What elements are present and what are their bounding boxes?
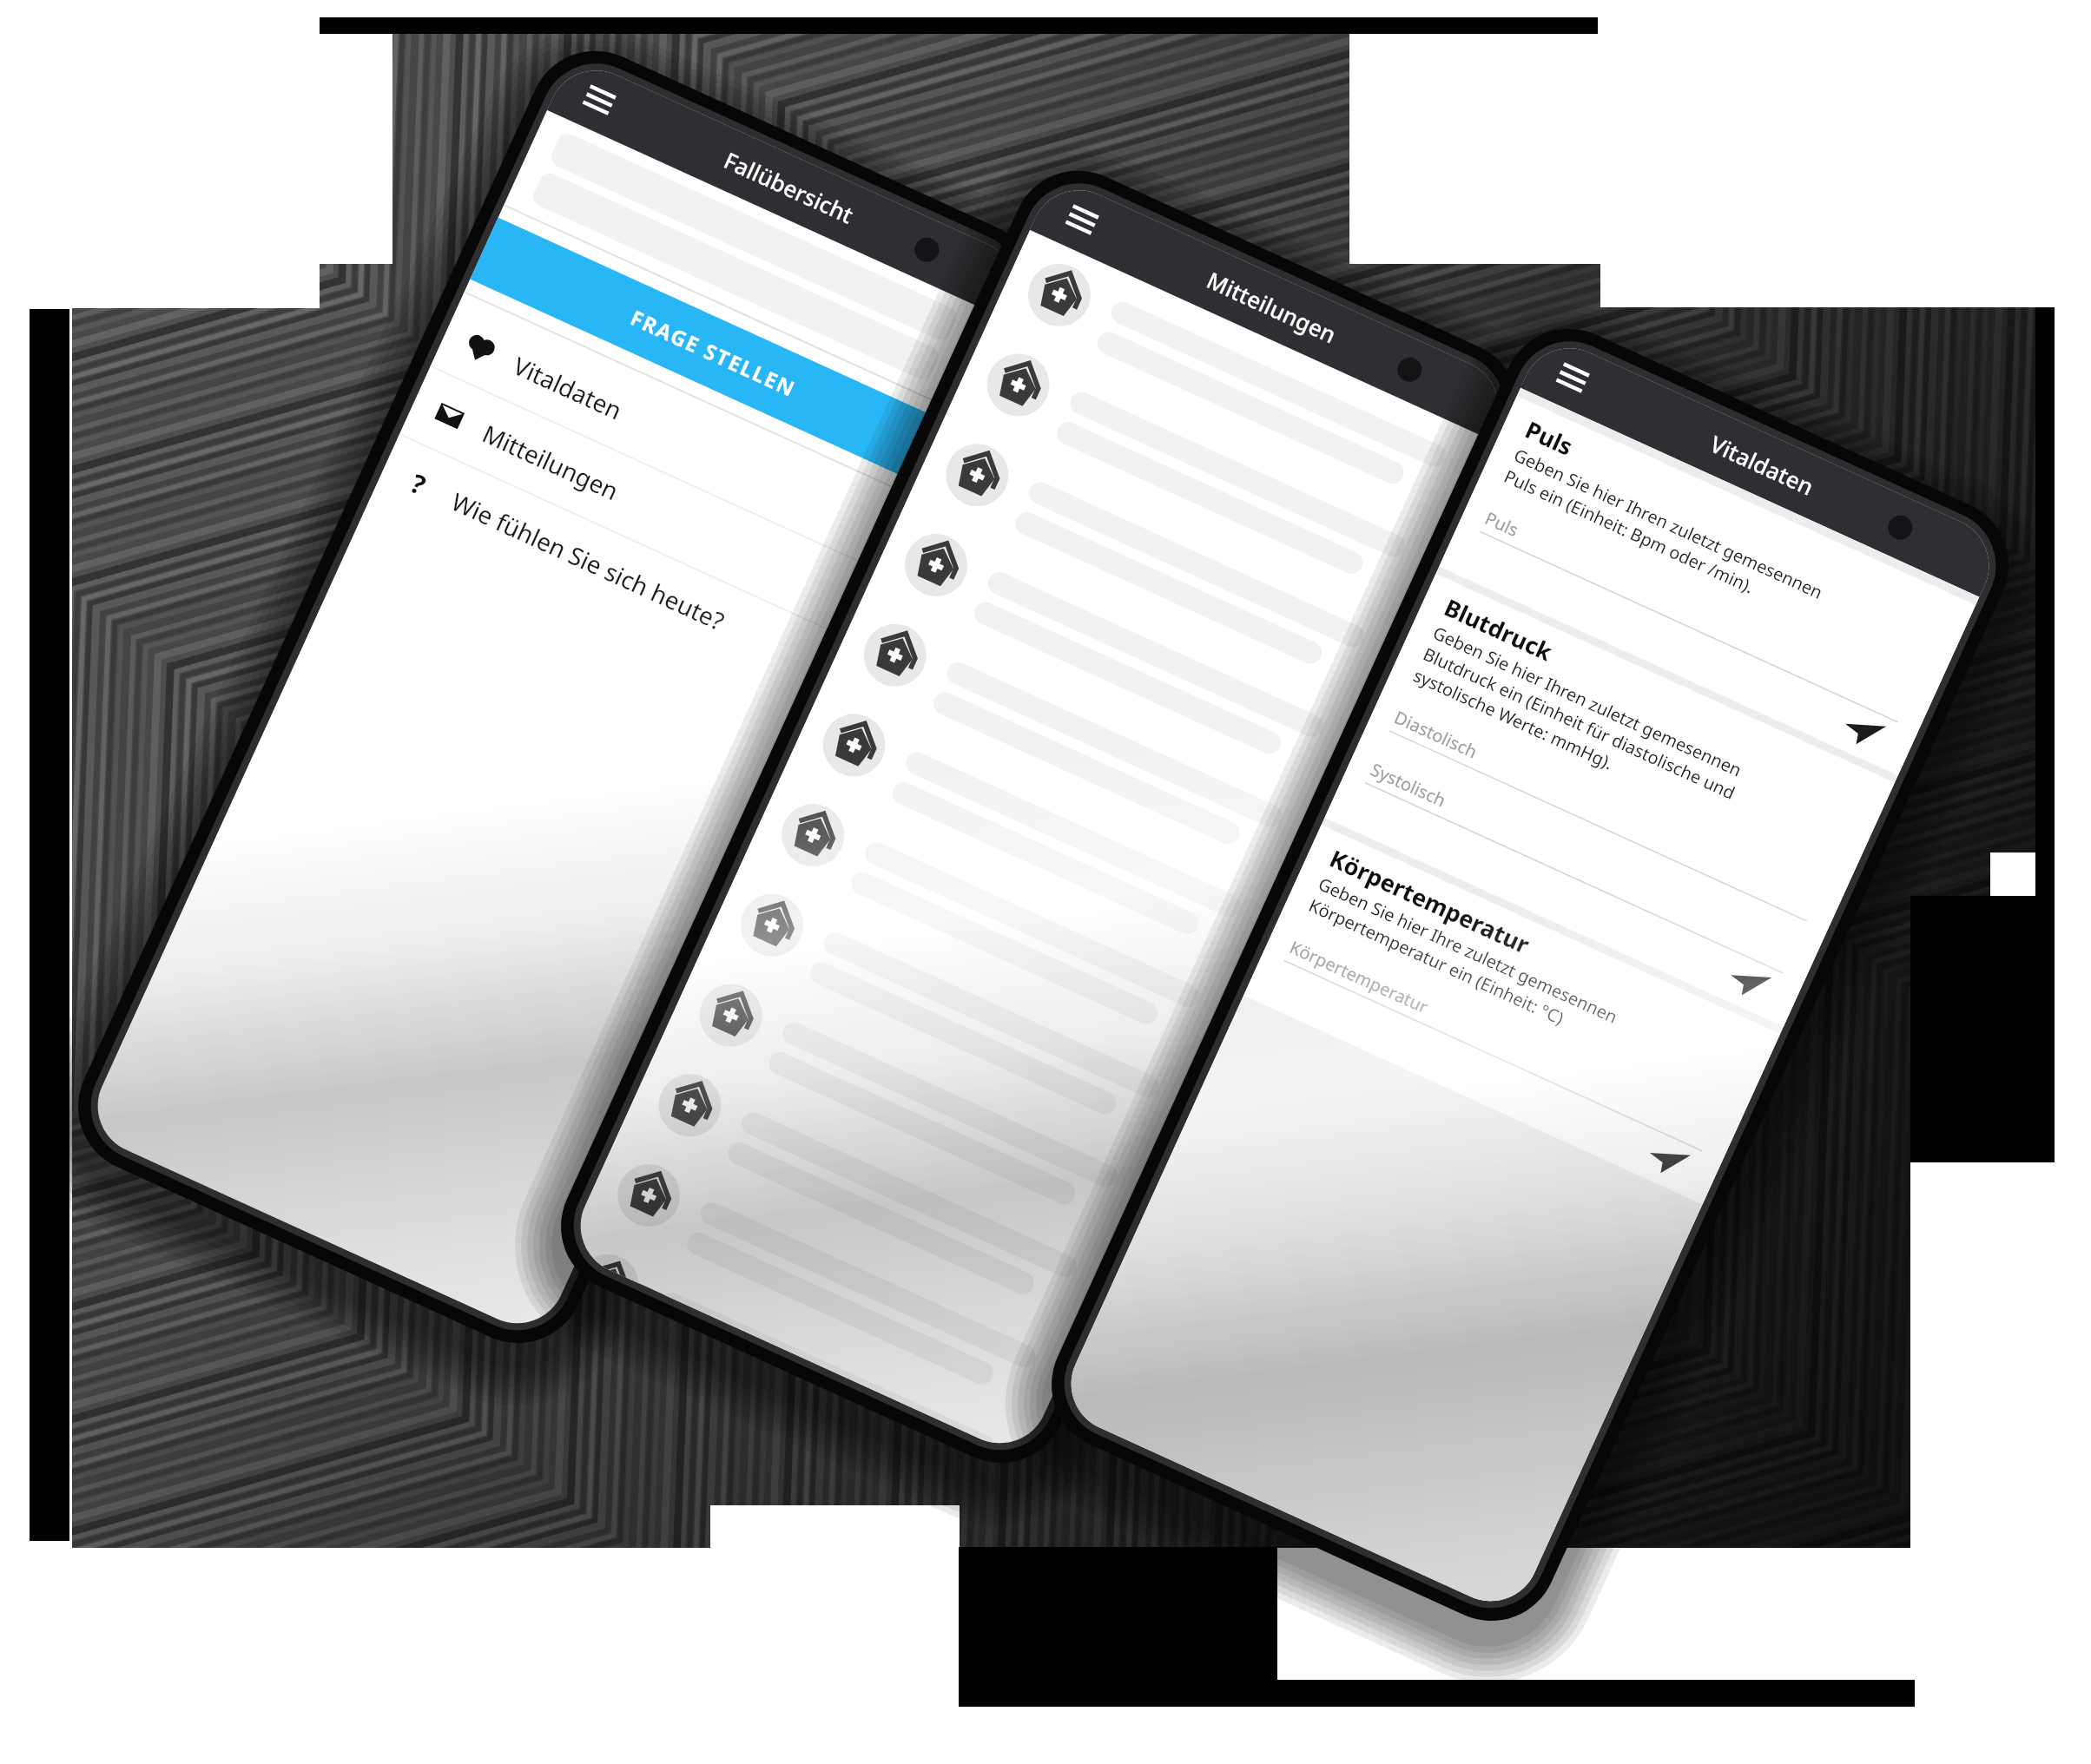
- button[interactable]: Mitteilung 2: [968, 417, 1376, 507]
- button[interactable]: Körpertemperatur senden: [1589, 1038, 1685, 1134]
- button[interactable]: Puls eingeben: [1355, 365, 1737, 521]
- button[interactable]: Vitaldaten: [373, 318, 755, 396]
- button[interactable]: Wie fühlen Sie sich heute?: [320, 434, 702, 514]
- button[interactable]: Mitteilungen: [347, 377, 729, 455]
- button[interactable]: Menü öffnen – Vitaldaten: [1522, 333, 1602, 413]
- button[interactable]: Mitteilung 3: [927, 507, 1336, 597]
- button[interactable]: Mitteilung 5: [846, 688, 1254, 778]
- button[interactable]: Mitteilung 1: [1007, 326, 1415, 417]
- button[interactable]: Mitteilung 4: [886, 597, 1294, 688]
- button[interactable]: Menü öffnen – Fallübersicht: [549, 56, 629, 135]
- button[interactable]: FRAGE STELLEN: [483, 299, 908, 385]
- button[interactable]: Puls senden: [1818, 500, 1914, 596]
- button[interactable]: Menü öffnen – Mitteilungen: [1032, 175, 1111, 255]
- button[interactable]: Körpertemperatur eingeben: [1172, 764, 1554, 938]
- button[interactable]: Blutdruck eingeben: [1276, 521, 1659, 764]
- button[interactable]: Blutdruck senden: [1704, 783, 1799, 879]
